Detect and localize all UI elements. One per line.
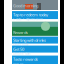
staticText: Join us: [13, 62, 23, 64]
staticText: Good morning: [13, 3, 38, 8]
staticText: Taste rewards: [13, 57, 38, 62]
button[interactable]: Taste rewards: [12, 56, 58, 64]
staticText: Get 50: [13, 47, 24, 52]
staticText: Tap to redeem today: [13, 12, 48, 17]
staticText: Rewards: [13, 30, 28, 35]
staticText: Double stars: [13, 52, 30, 55]
button[interactable]: Get 50: [12, 47, 58, 54]
staticText: Starting with drinks: [13, 38, 46, 43]
staticText: 5 stars • expires soon: [13, 17, 43, 21]
button[interactable]: Starting with drinks: [12, 38, 58, 45]
staticText: Order now: [13, 43, 28, 46]
button[interactable]: Rewards: [12, 22, 58, 36]
button[interactable]: Tap to redeem today: [12, 12, 58, 20]
